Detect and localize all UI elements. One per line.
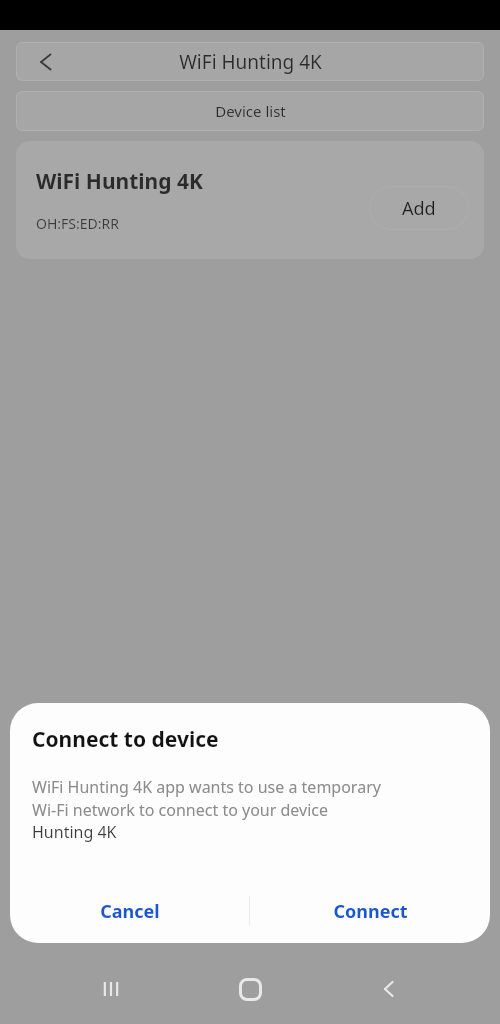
button[interactable]: Home [222, 961, 278, 1017]
button[interactable]: Recent apps [83, 961, 139, 1017]
staticText: WiFi Hunting 4K [179, 49, 322, 75]
staticText: Add [402, 196, 436, 221]
button[interactable]: Add [369, 186, 469, 230]
staticText: WiFi Hunting 4K [36, 167, 203, 196]
button[interactable]: WiFi Hunting 4K [16, 141, 484, 259]
staticText: Device list [215, 101, 286, 121]
button[interactable]: Cancel [10, 884, 249, 938]
staticText: Connect to device [32, 725, 219, 754]
staticText: Connect [333, 899, 408, 924]
staticText: Cancel [100, 899, 160, 924]
button[interactable]: Device list [16, 91, 484, 131]
button[interactable]: Connect [250, 884, 490, 938]
button[interactable]: Back [26, 42, 66, 81]
staticText: Hunting 4K [32, 821, 117, 843]
staticText: WiFi Hunting 4K app wants to use a tempo… [32, 776, 381, 821]
staticText: OH:FS:ED:RR [36, 214, 119, 233]
button[interactable]: Back [361, 961, 417, 1017]
